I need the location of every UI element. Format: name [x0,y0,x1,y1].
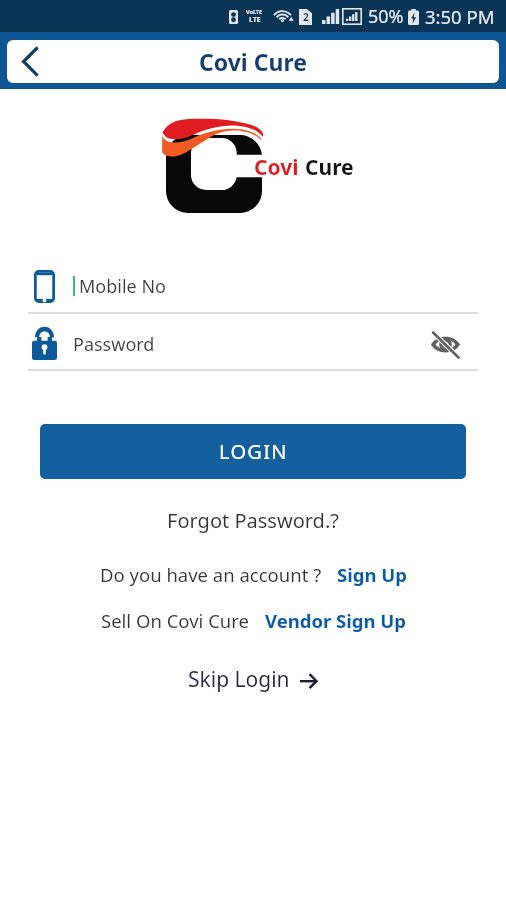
staticText: 50% [368,4,404,29]
staticText: Vendor Sign Up [265,608,406,633]
staticText: Cure [305,153,354,182]
staticText: Forgot Password.? [167,507,339,534]
button[interactable]: Forgot Password.? [0,504,506,536]
button[interactable]: Password [28,320,478,368]
button[interactable]: Sign Up [337,562,407,587]
staticText: Skip Login [188,665,290,694]
button[interactable]: LOGIN [40,424,466,479]
staticText: Password [73,332,155,357]
button[interactable]: Vendor Sign Up [265,608,406,633]
staticText: Covi [254,153,299,182]
staticText: Do you have an account ? [100,562,322,587]
staticText: Sell On Covi Cure [101,608,249,633]
button[interactable]: Toggle password visibility [426,327,464,361]
button[interactable]: Skip Login [0,665,506,694]
button[interactable]: Mobile No [28,262,478,310]
staticText: LOGIN [219,438,288,465]
staticText: VoLTE [246,8,263,15]
staticText: 3:50 PM [425,4,495,29]
staticText: LTE [249,15,261,25]
staticText: 2 [303,10,309,24]
staticText: Covi Cure [199,46,307,77]
button[interactable]: Back [8,40,51,83]
staticText: Sign Up [337,562,407,587]
staticText: Mobile No [79,274,166,299]
